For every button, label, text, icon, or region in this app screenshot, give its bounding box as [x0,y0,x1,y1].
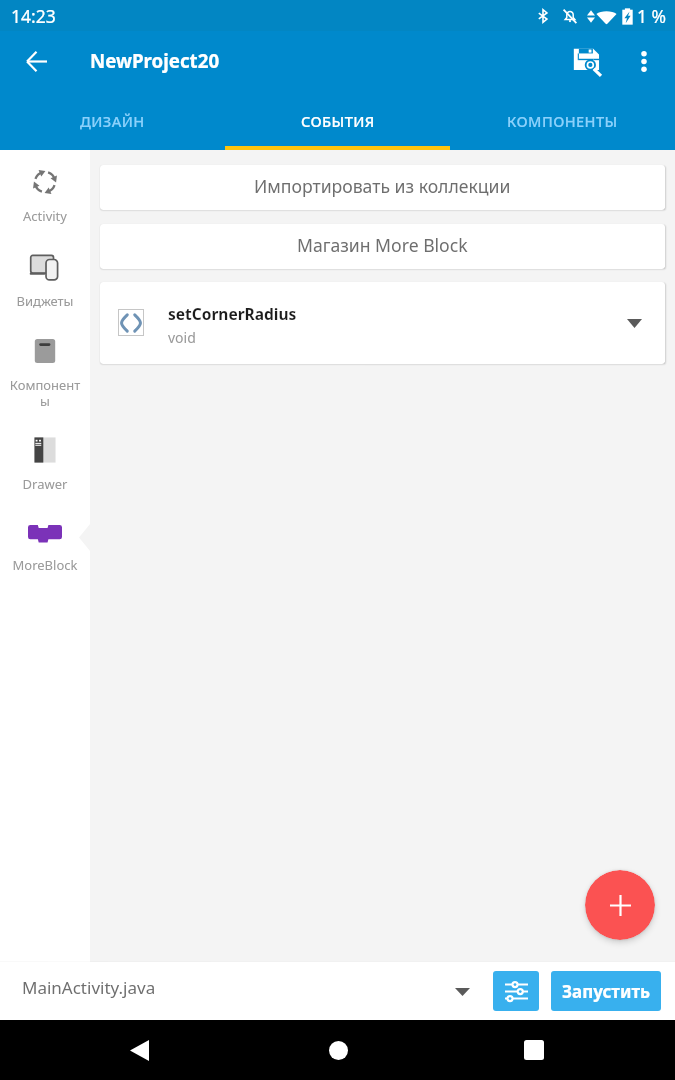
button[interactable]: Back [12,37,60,85]
staticText: 1 % [637,4,667,28]
staticText: СОБЫТИЯ [301,111,375,131]
button[interactable]: More options [622,39,666,83]
button[interactable]: Магазин More Block [100,224,665,269]
staticText: Drawer [9,475,81,493]
button[interactable]: Home [314,1026,362,1074]
button[interactable]: MainActivity.java [0,962,482,1016]
staticText: setCornerRadius [168,303,297,324]
staticText: void [168,328,196,347]
button[interactable]: Виджеты [0,247,90,332]
staticText: Магазин More Block [297,233,468,257]
staticText: Запустить [562,980,651,1003]
button[interactable]: Drawer [0,430,90,515]
button[interactable]: Импортировать из коллекции [100,165,665,210]
button[interactable]: MoreBlock [0,511,90,599]
button[interactable]: Settings [493,971,539,1011]
button[interactable]: Expand [612,301,656,345]
button[interactable]: Recents [510,1026,558,1074]
staticText: КОМПОНЕНТЫ [507,111,618,131]
staticText: Activity [9,207,81,225]
staticText: NewProject20 [90,48,220,73]
button[interactable]: КОМПОНЕНТЫ [450,100,675,150]
staticText: 14:23 [11,4,56,28]
staticText: MoreBlock [9,556,81,574]
staticText: MainActivity.java [22,976,156,999]
button[interactable]: Запустить [551,971,661,1011]
button[interactable]: ДИЗАЙН [0,100,225,150]
staticText: Виджеты [9,292,81,310]
button[interactable]: Компоненты [0,331,90,431]
button[interactable]: Activity [0,162,90,248]
staticText: ДИЗАЙН [80,111,145,131]
button[interactable]: Save [563,37,611,85]
staticText: Импортировать из коллекции [254,174,511,198]
button[interactable]: Back [115,1026,163,1074]
staticText: Компоненты [9,376,81,409]
button[interactable]: Add [585,870,655,940]
button[interactable]: setCornerRadius [100,282,665,364]
button[interactable]: СОБЫТИЯ [225,100,450,150]
